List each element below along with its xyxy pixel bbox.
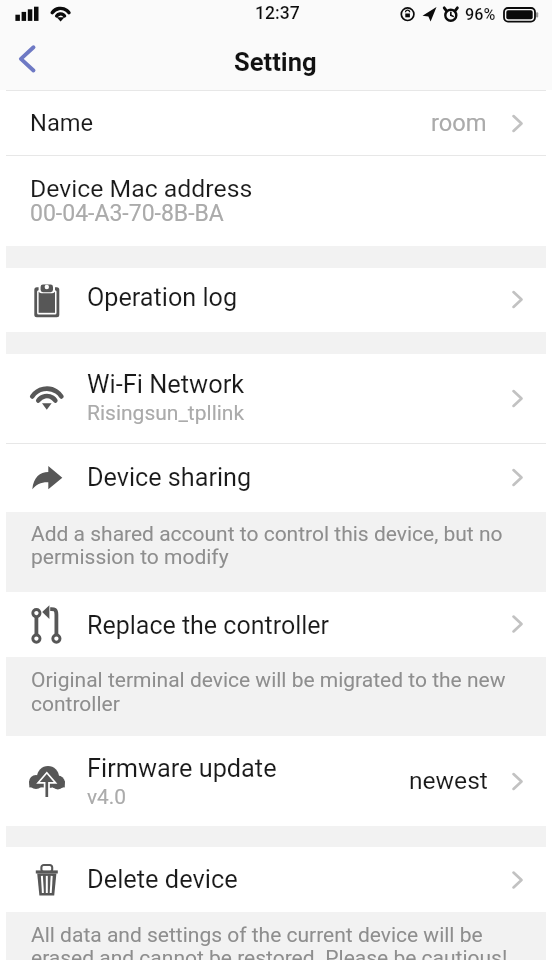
staticText: Original terminal device will be migrate… — [31, 668, 506, 693]
staticText: newest — [409, 766, 488, 795]
staticText: room — [431, 109, 487, 137]
button[interactable]: Wi-Fi Network — [0, 354, 552, 443]
staticText: 12:37 — [255, 3, 300, 24]
staticText: Wi-Fi Network — [87, 369, 245, 399]
staticText: All data and settings of the current dev… — [31, 923, 483, 948]
button[interactable]: Device Mac address — [0, 156, 552, 246]
staticText: 96% — [465, 5, 496, 24]
staticText: Device Mac address — [30, 174, 253, 203]
staticText: Name — [30, 109, 94, 137]
staticText: Replace the controller — [87, 611, 330, 640]
staticText: Firmware update — [87, 754, 277, 784]
staticText: 00-04-A3-70-8B-BA — [30, 200, 224, 227]
button[interactable]: Replace the controller — [0, 592, 552, 657]
staticText: Risingsun_tpllink — [87, 401, 245, 426]
button[interactable]: Device sharing — [0, 444, 552, 512]
staticText: erased and cannot be restored. Please be… — [31, 946, 508, 960]
staticText: controller — [31, 692, 120, 717]
button[interactable]: Firmware update — [0, 736, 552, 826]
staticText: Add a shared account to control this dev… — [31, 522, 503, 547]
button[interactable]: Operation log — [0, 268, 552, 332]
staticText: v4.0 — [87, 785, 127, 809]
button[interactable]: Back — [2, 35, 52, 85]
staticText: Operation log — [87, 283, 238, 313]
staticText: Device sharing — [87, 463, 252, 493]
button[interactable]: Name — [0, 91, 552, 155]
button[interactable]: Delete device — [0, 847, 552, 912]
staticText: Delete device — [87, 864, 238, 894]
staticText: Setting — [234, 47, 317, 77]
staticText: permission to modify — [31, 545, 229, 570]
